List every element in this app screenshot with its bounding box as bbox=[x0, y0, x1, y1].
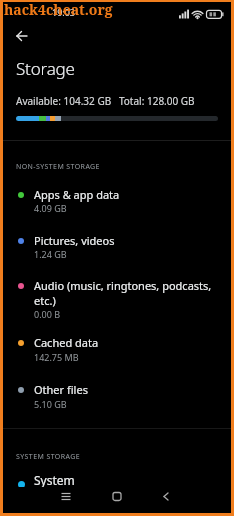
button[interactable] bbox=[0, 487, 78, 516]
staticText: Cached data bbox=[34, 335, 99, 350]
button[interactable] bbox=[0, 330, 234, 376]
staticText: 19:03 bbox=[52, 6, 76, 18]
staticText: Audio (music, ringtones, podcasts, bbox=[34, 278, 212, 293]
button[interactable] bbox=[78, 487, 156, 516]
staticText: 1.24 GB bbox=[34, 248, 67, 260]
staticText: Pictures, videos bbox=[34, 233, 115, 248]
staticText: System bbox=[34, 472, 75, 488]
button[interactable] bbox=[0, 466, 234, 488]
staticText: NON-SYSTEM STORAGE bbox=[16, 162, 100, 172]
staticText: SYSTEM STORAGE bbox=[16, 452, 80, 462]
button[interactable] bbox=[0, 268, 234, 330]
staticText: hack4cheat.org bbox=[4, 0, 113, 19]
staticText: Available: 104.32 GB Total: 128.00 GB bbox=[16, 94, 195, 108]
staticText: Apps & app data bbox=[34, 187, 120, 202]
staticText: 142.75 MB bbox=[34, 351, 79, 363]
staticText: Other files bbox=[34, 382, 88, 397]
staticText: Storage bbox=[16, 57, 75, 80]
button[interactable] bbox=[0, 176, 234, 222]
staticText: 5.10 GB bbox=[34, 398, 67, 410]
staticText: 4.09 GB bbox=[34, 202, 67, 214]
staticText: etc.) bbox=[34, 293, 56, 308]
staticText: 0.00 B bbox=[34, 308, 61, 320]
button[interactable] bbox=[0, 376, 234, 422]
button[interactable] bbox=[0, 222, 234, 268]
button[interactable] bbox=[10, 26, 34, 50]
button[interactable] bbox=[156, 487, 234, 516]
